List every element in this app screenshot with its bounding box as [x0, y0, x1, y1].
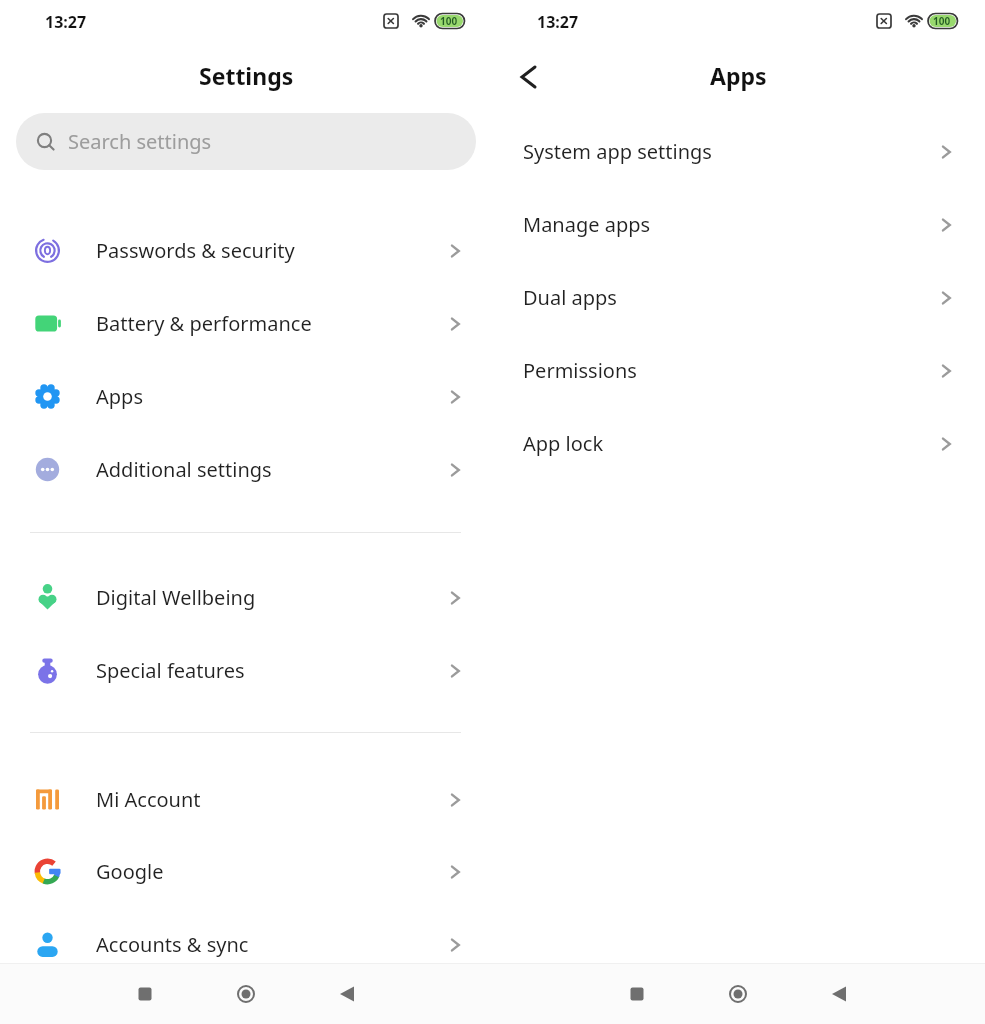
button[interactable]: Dual apps — [492, 261, 985, 334]
staticText: Mi Account — [96, 786, 201, 813]
button[interactable]: Manage apps — [492, 188, 985, 261]
button[interactable]: Search settings — [16, 113, 476, 170]
staticText: 100 — [933, 14, 951, 28]
button[interactable] — [817, 972, 861, 1016]
button[interactable]: App lock — [492, 407, 985, 480]
staticText: Manage apps — [523, 211, 651, 238]
staticText: 13:27 — [537, 11, 579, 33]
staticText: Search settings — [68, 128, 212, 155]
button[interactable]: Additional settings — [0, 433, 492, 506]
staticText: Dual apps — [523, 284, 617, 311]
button[interactable] — [325, 972, 369, 1016]
staticText: Additional settings — [96, 456, 272, 483]
staticText: Google — [96, 858, 164, 885]
button[interactable] — [615, 972, 659, 1016]
button[interactable] — [224, 972, 268, 1016]
button[interactable]: Digital Wellbeing — [0, 561, 492, 634]
button[interactable] — [716, 972, 760, 1016]
button[interactable]: Accounts & sync — [0, 908, 492, 981]
button[interactable] — [123, 972, 167, 1016]
staticText: Accounts & sync — [96, 931, 249, 958]
staticText: Battery & performance — [96, 310, 312, 337]
staticText: App lock — [523, 430, 604, 457]
staticText: Apps — [710, 60, 767, 91]
staticText: Apps — [96, 383, 143, 410]
button[interactable]: Apps — [0, 360, 492, 433]
button[interactable]: Passwords & security — [0, 214, 492, 287]
button[interactable]: Battery & performance — [0, 287, 492, 360]
button[interactable]: Mi Account — [0, 763, 492, 836]
staticText: Special features — [96, 657, 245, 684]
button[interactable]: System app settings — [492, 115, 985, 188]
button[interactable]: Google — [0, 835, 492, 908]
staticText: Passwords & security — [96, 237, 295, 264]
staticText: System app settings — [523, 138, 712, 165]
button[interactable]: Special features — [0, 634, 492, 707]
staticText: Settings — [199, 60, 294, 91]
staticText: Permissions — [523, 357, 637, 384]
staticText: 100 — [440, 14, 458, 28]
button[interactable]: Permissions — [492, 334, 985, 407]
staticText: Digital Wellbeing — [96, 584, 256, 611]
staticText: 13:27 — [45, 11, 87, 33]
button[interactable] — [507, 55, 551, 99]
